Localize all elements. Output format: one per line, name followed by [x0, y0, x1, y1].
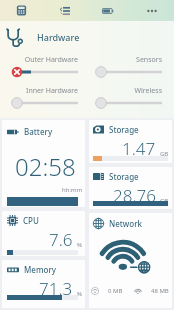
staticText: hh:mm: [62, 186, 83, 194]
staticText: 1.47: [122, 137, 156, 160]
staticText: GB: [160, 197, 169, 205]
staticText: Memory: [24, 264, 57, 275]
button[interactable]: Battery: [2, 120, 85, 207]
staticText: 48 MB: [151, 287, 169, 295]
staticText: 02:58: [15, 150, 76, 183]
button[interactable]: Wireless: [96, 86, 162, 109]
button[interactable]: Storage: [89, 167, 172, 209]
button[interactable]: Calculator: [0, 0, 43, 21]
staticText: Wireless: [96, 86, 162, 96]
staticText: Sensors: [96, 55, 162, 65]
staticText: Hardware: [37, 31, 80, 43]
button[interactable]: Memory: [2, 260, 85, 308]
button[interactable]: Battery: [86, 0, 130, 21]
staticText: 7.6: [49, 228, 73, 251]
staticText: GB: [160, 150, 169, 158]
staticText: Battery: [24, 126, 53, 137]
staticText: Inner Hardware: [12, 86, 78, 96]
staticText: 28.76: [113, 184, 156, 207]
staticText: 0 MB: [108, 287, 123, 295]
button[interactable]: Sensors: [96, 55, 162, 78]
button[interactable]: Storage: [89, 120, 172, 163]
staticText: Outer Hardware: [12, 55, 78, 65]
button[interactable]: Inner Hardware: [12, 86, 78, 109]
staticText: Network: [109, 218, 143, 229]
button[interactable]: Network: [89, 213, 172, 308]
staticText: CPU: [23, 215, 39, 226]
staticText: Storage: [109, 171, 139, 182]
staticText: Storage: [109, 124, 139, 135]
staticText: %: [77, 290, 82, 298]
button[interactable]: Outer Hardware: [12, 55, 78, 78]
staticText: 71.3: [39, 277, 73, 300]
button[interactable]: CPU: [2, 211, 85, 256]
button[interactable]: More options: [130, 0, 174, 21]
button[interactable]: Sort: [43, 0, 86, 21]
staticText: %: [77, 241, 82, 249]
